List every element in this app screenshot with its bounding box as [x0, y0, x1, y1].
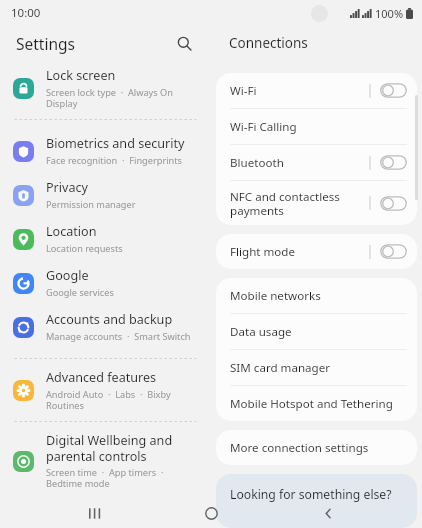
- staticText: Data usage: [230, 324, 407, 340]
- button[interactable]: Privacy: [0, 173, 211, 217]
- button[interactable]: NFC and contactless payments: [216, 181, 417, 225]
- button[interactable]: Biometrics and security: [0, 129, 211, 173]
- staticText: Settings: [16, 33, 171, 54]
- staticText: Wi-Fi Calling: [230, 119, 407, 135]
- staticText: Location requests: [46, 242, 123, 255]
- staticText: Screen lock type · Always On Display: [46, 86, 201, 110]
- staticText: Google services: [46, 286, 114, 299]
- button[interactable]: SIM card manager: [216, 350, 417, 385]
- button[interactable]: Data usage: [216, 314, 417, 349]
- staticText: Biometrics and security: [46, 135, 185, 152]
- staticText: Mobile Hotspot and Tethering: [230, 396, 407, 412]
- button[interactable]: Mobile networks: [216, 278, 417, 313]
- button[interactable]: Back: [306, 498, 350, 528]
- button[interactable]: Google: [0, 261, 211, 305]
- button[interactable]: Home: [189, 498, 233, 528]
- staticText: NFC and contactless payments: [230, 189, 369, 218]
- button[interactable]: Looking for something else?: [216, 474, 417, 528]
- staticText: Screen time · App timers · Bedtime mode: [46, 466, 201, 490]
- staticText: Permission manager: [46, 198, 136, 211]
- staticText: Android Auto · Labs · Bixby Routines: [46, 388, 201, 412]
- button[interactable]: Digital Wellbeing and parental controls: [0, 431, 211, 491]
- staticText: Connections: [229, 34, 308, 52]
- button[interactable]: Accounts and backup: [0, 305, 211, 349]
- button[interactable]: Recent apps: [73, 498, 117, 528]
- staticText: Digital Wellbeing and parental controls: [46, 432, 201, 464]
- button[interactable]: Search: [171, 30, 197, 56]
- staticText: Location: [46, 223, 97, 240]
- staticText: Bluetooth: [230, 155, 369, 171]
- staticText: SIM card manager: [230, 360, 407, 376]
- staticText: Google: [46, 267, 89, 284]
- staticText: 10:00: [11, 5, 41, 21]
- staticText: Wi-Fi: [230, 83, 369, 99]
- button[interactable]: Lock screen: [0, 66, 211, 110]
- button[interactable]: More connection settings: [216, 430, 417, 465]
- button[interactable]: Mobile Hotspot and Tethering: [216, 386, 417, 421]
- staticText: Lock screen: [46, 67, 116, 84]
- button[interactable]: Bluetooth: [216, 145, 417, 180]
- button[interactable]: Location: [0, 217, 211, 261]
- staticText: Mobile networks: [230, 288, 407, 304]
- staticText: Flight mode: [230, 244, 369, 260]
- staticText: More connection settings: [230, 440, 407, 456]
- staticText: Looking for something else?: [230, 486, 392, 503]
- staticText: Manage accounts · Smart Switch: [46, 330, 191, 343]
- button[interactable]: Advanced features: [0, 368, 211, 412]
- button[interactable]: Wi-Fi Calling: [216, 109, 417, 144]
- button[interactable]: Flight mode: [216, 234, 417, 269]
- staticText: Accounts and backup: [46, 311, 173, 328]
- staticText: Face recognition · Fingerprints: [46, 154, 182, 167]
- staticText: 100%: [375, 6, 404, 21]
- staticText: Advanced features: [46, 369, 157, 386]
- button[interactable]: Wi-Fi: [216, 73, 417, 108]
- staticText: Privacy: [46, 179, 89, 196]
